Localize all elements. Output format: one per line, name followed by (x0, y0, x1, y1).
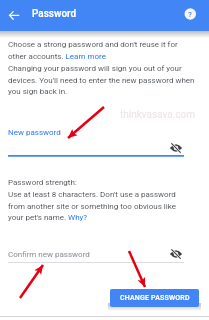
staticText: Changing your password will sign you out… (8, 64, 196, 96)
button[interactable]: Back (5, 7, 23, 25)
staticText: Confirm new password (8, 250, 90, 259)
button[interactable]: Help (178, 2, 202, 26)
staticText: Choose a strong password and don't reuse… (8, 40, 196, 61)
button[interactable]: Show confirm password (168, 246, 184, 262)
staticText: Password (32, 8, 77, 20)
staticText: ? (188, 10, 192, 19)
staticText: New password (8, 128, 61, 137)
button[interactable]: New password (0, 126, 209, 160)
staticText: thinkvasava.com (120, 109, 196, 121)
button[interactable]: CHANGE PASSWORD (110, 289, 199, 307)
staticText: CHANGE PASSWORD (120, 294, 190, 302)
staticText: Password strength: (8, 178, 77, 187)
staticText: Use at least 8 characters. Don't use a p… (8, 190, 188, 222)
button[interactable]: Confirm new password (0, 245, 209, 267)
button[interactable]: Show new password (168, 140, 184, 156)
